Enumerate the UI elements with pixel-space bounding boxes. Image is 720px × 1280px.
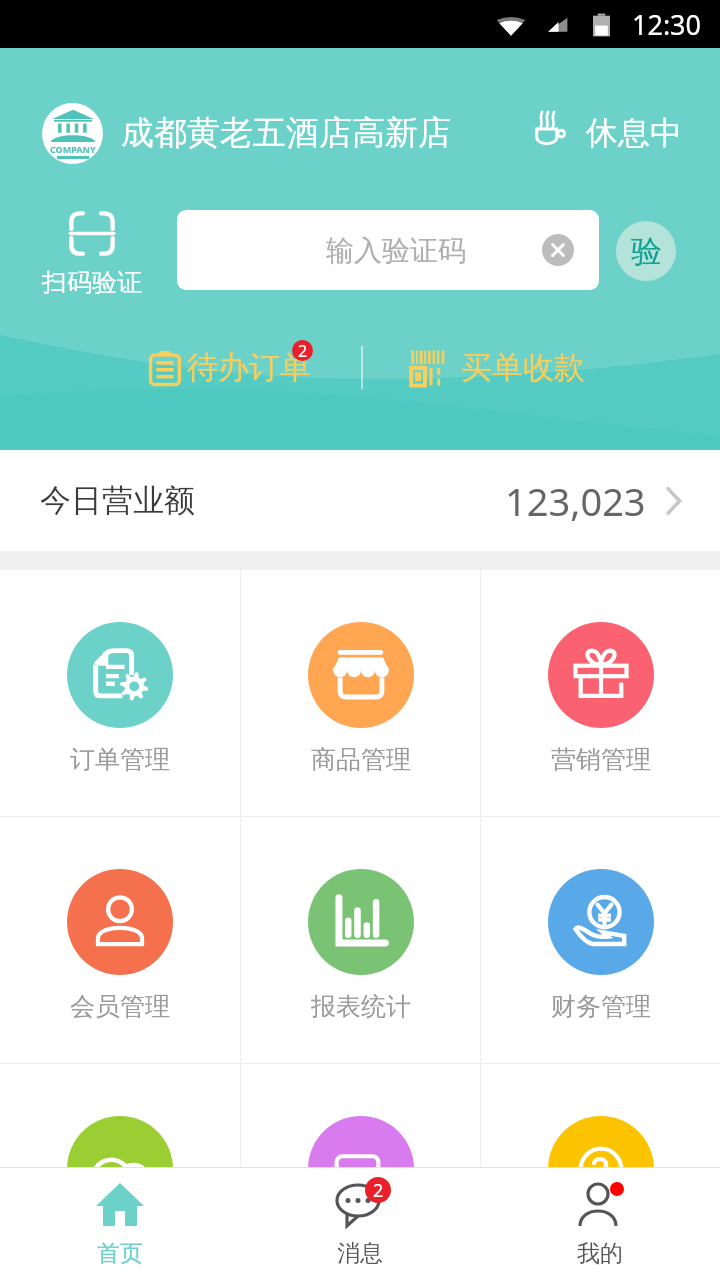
other: Wi-Fi [494,10,528,40]
button[interactable]: 输入验证码 [177,210,599,290]
button[interactable]: 财务管理 [481,817,720,1063]
button[interactable]: 会员管理 [0,817,240,1063]
staticText: 帮助 [576,1238,626,1269]
button[interactable]: 帮助 [481,1064,720,1280]
staticText: 成都黄老五酒店高新店 [121,112,451,154]
button[interactable]: 营销管理 [481,570,720,816]
staticText: 买单收款 [461,348,585,387]
button[interactable]: Store status [536,113,682,153]
other: Store status [536,110,576,148]
button[interactable]: 我的 [480,1168,720,1280]
button[interactable]: 设置 [0,1064,240,1280]
staticText: 输入验证码 [326,233,466,268]
button[interactable]: 首页 [0,1168,240,1280]
other: Battery [593,10,610,40]
staticText: 报表统计 [311,991,411,1022]
staticText: 营销管理 [551,744,651,775]
staticText: 财务管理 [551,991,651,1022]
staticText: 商品管理 [311,744,411,775]
staticText: 卡券 [336,1238,386,1269]
staticText: 2 [373,1178,384,1203]
staticText: 待办订单 [187,348,311,387]
button[interactable]: 2 [240,1168,480,1280]
staticText: 12:30 [632,6,702,43]
button[interactable]: 报表统计 [241,817,480,1063]
staticText: 验 [631,232,662,271]
button[interactable]: 验 [616,221,676,281]
staticText: 我的 [577,1239,623,1268]
staticText: 会员管理 [70,991,170,1022]
button[interactable]: 今日营业额 [0,450,720,551]
staticText: 123,023 [505,475,646,527]
other: Clear [542,234,574,266]
staticText: 首页 [97,1239,143,1268]
staticText: 消息 [337,1239,383,1268]
button[interactable]: 商品管理 [241,570,480,816]
staticText: 设置 [95,1238,145,1269]
staticText: COMPANY [50,143,96,155]
button[interactable]: Scan QR code [28,210,156,298]
button[interactable]: 待办订单 [147,348,311,387]
staticText: 扫码验证 [42,267,142,298]
staticText: 休息中 [586,113,682,153]
staticText: 今日营业额 [40,481,195,520]
button[interactable]: 买单收款 [409,348,585,387]
button[interactable]: 订单管理 [0,570,240,816]
button[interactable]: 卡券 [241,1064,480,1280]
staticText: 订单管理 [70,744,170,775]
staticText: 2 [298,340,308,361]
other: Scan QR code [68,210,116,257]
